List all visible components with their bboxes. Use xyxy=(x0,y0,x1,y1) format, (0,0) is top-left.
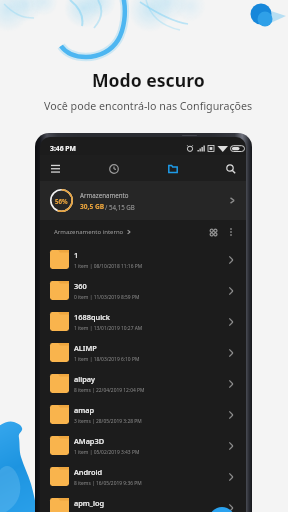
button[interactable]: Android xyxy=(40,461,246,492)
staticText: 1 item | 18/03/2019 6:10 PM xyxy=(74,356,140,363)
staticText: / 54,15 GB xyxy=(105,203,135,211)
button[interactable]: Recent xyxy=(101,156,126,181)
staticText: 0 item | 11/03/2019 8:59 PM xyxy=(74,294,140,301)
staticText: Armazenamento xyxy=(80,191,129,199)
button[interactable]: 360 xyxy=(40,275,246,306)
staticText: 1688quick xyxy=(74,312,110,322)
staticText: Android xyxy=(74,467,103,477)
button[interactable]: AMap3D xyxy=(40,430,246,461)
staticText: 1 item | 13/01/2019 10:27 AM xyxy=(74,325,143,332)
staticText: 1 item | 08/10/2018 11:16 PM xyxy=(74,263,143,270)
staticText: 56% xyxy=(55,197,68,205)
staticText: AMap3D xyxy=(74,436,105,446)
button[interactable]: Menu xyxy=(43,156,68,181)
button[interactable]: alipay xyxy=(40,368,246,399)
staticText: 3 items | 28/05/2019 3:28 PM xyxy=(74,418,142,425)
button[interactable]: amap xyxy=(40,399,246,430)
button[interactable]: Armazenamento interno xyxy=(54,228,132,236)
staticText: Você pode encontrá-lo nas Configurações xyxy=(44,99,253,114)
staticText: 8 items | 16/05/2019 9:36 PM xyxy=(74,480,142,487)
staticText: Modo escuro xyxy=(92,68,205,92)
button[interactable]: Grid view xyxy=(205,224,222,241)
button[interactable]: apm_log xyxy=(40,492,246,512)
staticText: 8 items | 22/04/2019 12:04 PM xyxy=(74,387,145,394)
staticText: alipay xyxy=(74,374,95,384)
button[interactable]: Add xyxy=(209,507,235,512)
button[interactable]: More options xyxy=(224,225,238,239)
button[interactable]: 1688quick xyxy=(40,306,246,337)
staticText: ALIMP xyxy=(74,343,97,353)
staticText: 1 item | 05/02/2019 3:43 PM xyxy=(74,449,140,456)
staticText: apm_log xyxy=(74,498,105,508)
staticText: 30,5 GB xyxy=(80,202,105,211)
staticText: 360 xyxy=(74,281,87,291)
staticText: 3:46 PM xyxy=(50,144,76,153)
staticText: Armazenamento interno xyxy=(54,228,124,236)
button[interactable]: Search xyxy=(218,156,243,181)
staticText: amap xyxy=(74,405,95,415)
button[interactable]: 1 xyxy=(40,244,246,275)
staticText: 1 xyxy=(74,250,79,260)
button[interactable]: 56% xyxy=(40,181,246,220)
button[interactable]: ALIMP xyxy=(40,337,246,368)
button[interactable]: Files xyxy=(160,156,185,181)
